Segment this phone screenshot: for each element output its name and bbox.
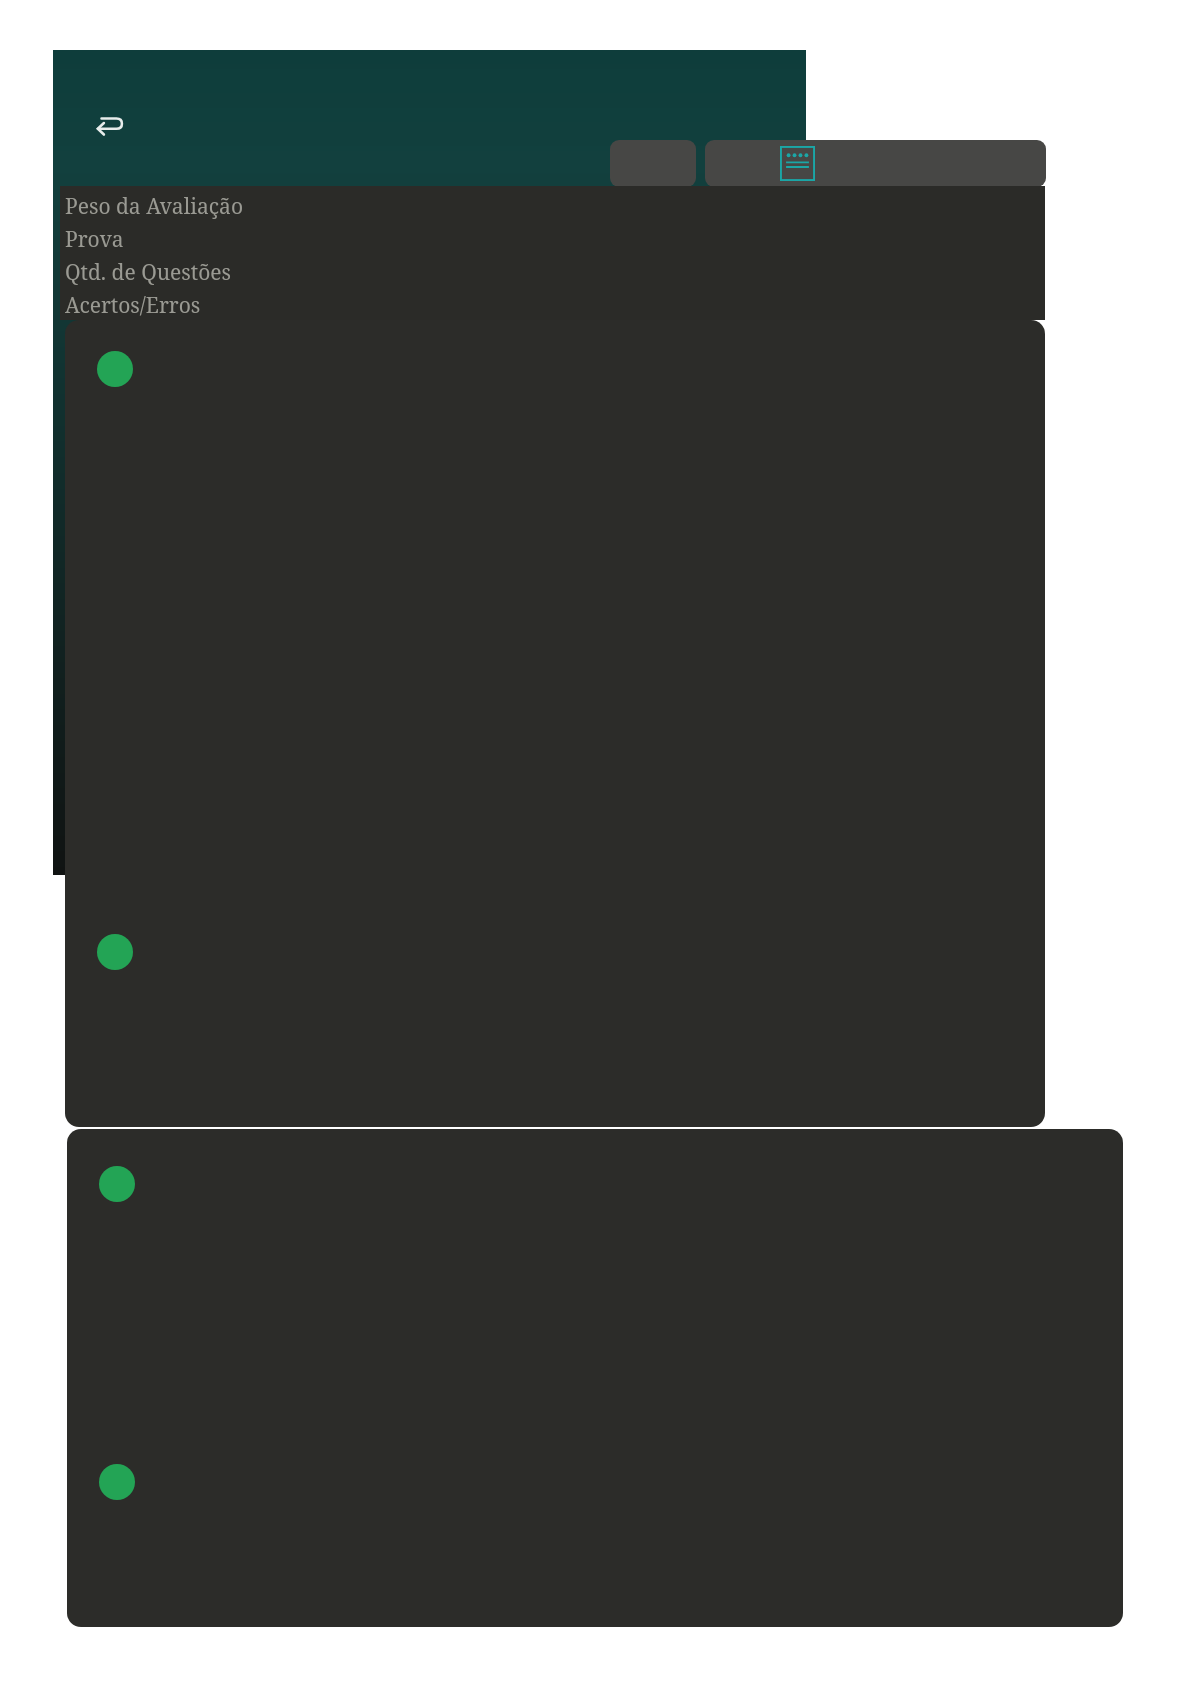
- staticText: Prova: [65, 225, 124, 254]
- button[interactable]: Opção: [610, 140, 696, 187]
- button[interactable]: [65, 320, 1045, 1127]
- button[interactable]: Voltar: [79, 94, 139, 154]
- staticText: Acertos/Erros: [65, 291, 201, 320]
- staticText: Qtd. de Questões: [65, 258, 232, 287]
- staticText: Peso da Avaliação: [65, 192, 243, 221]
- button[interactable]: [67, 1129, 1123, 1627]
- button[interactable]: Prova: [705, 140, 1046, 187]
- staticText: Nota: [65, 324, 113, 326]
